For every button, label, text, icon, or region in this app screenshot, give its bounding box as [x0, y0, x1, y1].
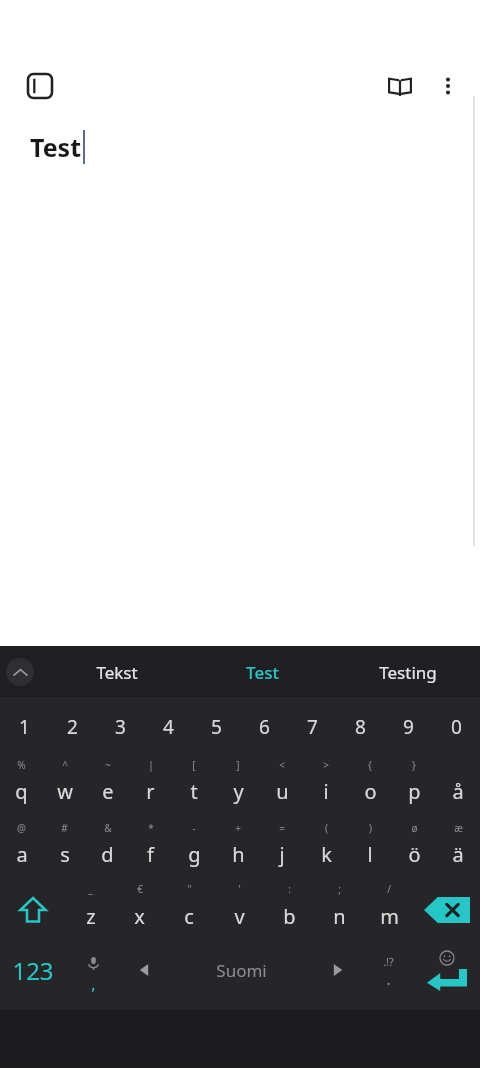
button[interactable]: ; [314, 880, 364, 940]
button[interactable]: ~ [86, 754, 129, 817]
staticText: 5 [211, 714, 222, 740]
button[interactable]: ( [304, 817, 348, 880]
staticText: ' [238, 882, 241, 896]
staticText: e [102, 778, 114, 805]
staticText: ( [325, 821, 328, 835]
button[interactable]: Side panel [16, 62, 64, 110]
staticText: d [101, 841, 114, 868]
staticText: ä [452, 841, 464, 868]
staticText: Testing [379, 661, 437, 684]
staticText: r [146, 778, 155, 805]
staticText: x [134, 903, 145, 930]
button[interactable]: Move cursor right [314, 940, 362, 1000]
button[interactable]: 4 [144, 699, 192, 754]
staticText: 7 [307, 714, 318, 740]
button[interactable]: Voice input [66, 940, 120, 1000]
button[interactable]: @ [0, 817, 43, 880]
staticText: 8 [355, 714, 366, 740]
button[interactable]: } [392, 754, 436, 817]
button[interactable]: : [264, 880, 314, 940]
button[interactable]: * [129, 817, 172, 880]
staticText: { [368, 758, 372, 772]
button[interactable]: æ [436, 817, 480, 880]
button[interactable]: > [304, 754, 348, 817]
staticText: : [288, 882, 291, 896]
staticText: ) [369, 821, 372, 835]
button[interactable]: Expand suggestions [6, 658, 34, 686]
staticText: 1 [19, 714, 30, 740]
staticText: ; [338, 882, 341, 896]
staticText: [ [192, 758, 196, 772]
staticText: " [187, 882, 192, 896]
staticText: 4 [163, 714, 174, 740]
button[interactable]: Shift [0, 880, 66, 940]
button[interactable]: # [43, 817, 86, 880]
button[interactable]: 6 [240, 699, 288, 754]
staticText: j [279, 841, 285, 868]
button[interactable]: ^ [43, 754, 86, 817]
button[interactable]: 0 [432, 699, 480, 754]
button[interactable]: More options [424, 62, 472, 110]
button[interactable]: _ [66, 880, 115, 940]
button[interactable]: Reading mode [376, 62, 424, 110]
button[interactable]: < [260, 754, 304, 817]
button[interactable]: 2 [48, 699, 96, 754]
staticText: h [232, 841, 245, 868]
staticText: 6 [259, 714, 270, 740]
button[interactable]: | [129, 754, 172, 817]
button[interactable]: 1 [0, 699, 48, 754]
button[interactable]: ø [392, 817, 436, 880]
staticText: z [86, 903, 96, 930]
staticText: s [60, 841, 70, 868]
staticText: 9 [403, 714, 414, 740]
button[interactable]: Backspace [414, 880, 480, 940]
staticText: t [190, 778, 198, 805]
button[interactable]: 9 [384, 699, 432, 754]
button[interactable]: = [260, 817, 304, 880]
staticText: * [148, 821, 154, 835]
button[interactable]: - [172, 817, 216, 880]
staticText: o [364, 778, 377, 805]
staticText: ^ [62, 758, 68, 772]
staticText: å [452, 778, 464, 805]
staticText: + [235, 821, 241, 835]
button[interactable]: ] [216, 754, 260, 817]
button[interactable]: 123 [0, 940, 66, 1000]
staticText: i [323, 778, 329, 805]
button[interactable]: ) [348, 817, 392, 880]
button[interactable]: Tekst [44, 646, 190, 698]
staticText: % [17, 758, 26, 772]
staticText: / [387, 882, 391, 896]
button[interactable]: / [364, 880, 414, 940]
button[interactable]: 5 [192, 699, 240, 754]
staticText: f [147, 841, 154, 868]
staticText: y [233, 778, 244, 805]
button[interactable]: % [0, 754, 43, 817]
staticText: Tekst [96, 661, 138, 684]
staticText: w [57, 778, 73, 805]
button[interactable]: Test [190, 646, 335, 698]
button[interactable]: Move cursor left [120, 940, 168, 1000]
button[interactable]: { [348, 754, 392, 817]
staticText: @ [17, 821, 26, 835]
staticText: < [279, 758, 285, 772]
button[interactable]: [ [172, 754, 216, 817]
button[interactable]: € [115, 880, 164, 940]
button[interactable]: Enter [414, 940, 480, 1000]
button[interactable]: Testing [335, 646, 480, 698]
button[interactable]: 8 [336, 699, 384, 754]
button[interactable]: Suomi [168, 940, 314, 1000]
staticText: 2 [67, 714, 78, 740]
button[interactable]: å [436, 754, 480, 817]
staticText: } [412, 758, 416, 772]
button[interactable]: .!? [362, 940, 414, 1000]
button[interactable]: " [164, 880, 214, 940]
button[interactable]: & [86, 817, 129, 880]
button[interactable]: + [216, 817, 260, 880]
button[interactable]: 3 [96, 699, 144, 754]
button[interactable]: ' [214, 880, 264, 940]
staticText: p [408, 778, 421, 805]
staticText: l [367, 841, 373, 868]
button[interactable]: 7 [288, 699, 336, 754]
staticText: b [283, 903, 296, 930]
